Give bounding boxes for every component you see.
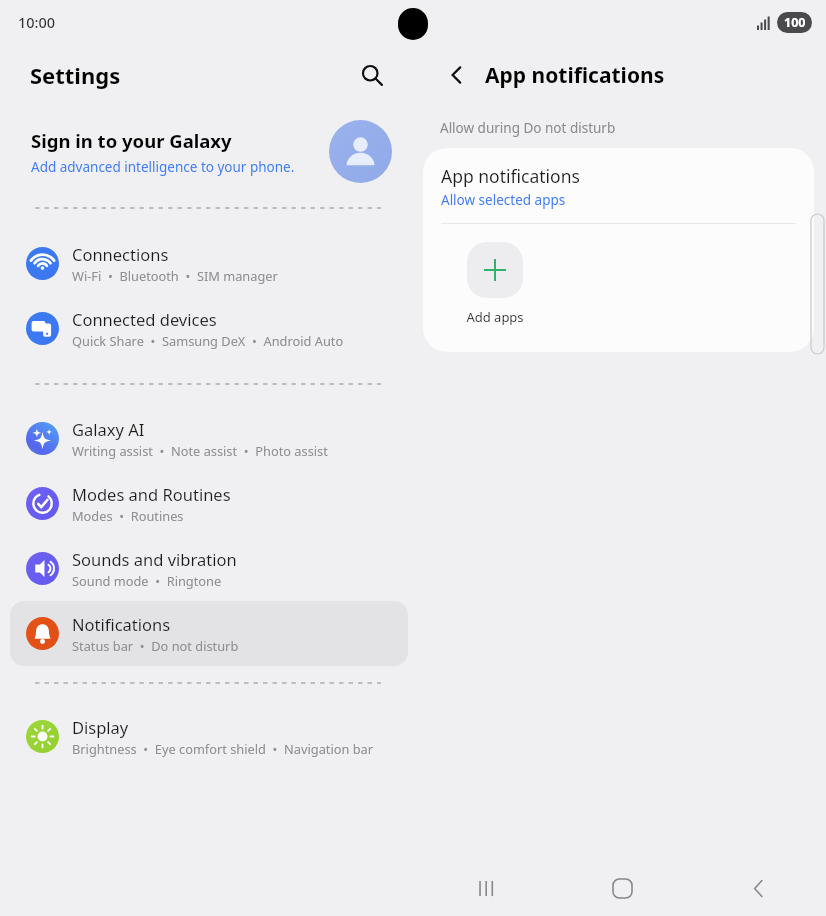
staticText: 100 [784, 14, 806, 31]
button[interactable]: Display [10, 704, 408, 769]
staticText: Brightness • Eye comfort shield • Naviga… [72, 740, 374, 757]
staticText: Add apps [466, 308, 524, 326]
button[interactable]: Galaxy AI [10, 406, 408, 471]
button[interactable]: Search [352, 55, 392, 95]
staticText: Quick Share • Samsung DeX • Android Auto [72, 332, 344, 349]
staticText: Allow during Do not disturb [440, 119, 616, 137]
staticText: Sound mode • Ringtone [72, 572, 222, 589]
staticText: Galaxy AI [72, 418, 145, 440]
staticText: Add advanced intelligence to your phone. [31, 158, 295, 176]
button[interactable]: Back [690, 860, 826, 916]
button[interactable]: Connected devices [10, 296, 408, 361]
button[interactable]: Connections [10, 231, 408, 296]
staticText: Writing assist • Note assist • Photo ass… [72, 442, 328, 459]
staticText: Modes and Routines [72, 483, 231, 505]
staticText: Notifications [72, 613, 171, 635]
staticText: App notifications [485, 61, 665, 90]
button[interactable]: Sign in to your Galaxy [0, 106, 418, 191]
button[interactable]: Back [436, 54, 478, 96]
staticText: Settings [30, 60, 121, 90]
staticText: Connections [72, 243, 169, 265]
staticText: Wi-Fi • Bluetooth • SIM manager [72, 267, 278, 284]
staticText: Sign in to your Galaxy [31, 128, 232, 153]
staticText: App notifications [441, 164, 580, 188]
staticText: Sounds and vibration [72, 548, 237, 570]
staticText: 10:00 [18, 12, 56, 32]
button[interactable]: Notifications [10, 601, 408, 666]
button[interactable]: Modes and Routines [10, 471, 408, 536]
button[interactable]: Home [554, 860, 690, 916]
button[interactable]: App notifications [423, 148, 814, 223]
staticText: Status bar • Do not disturb [72, 637, 239, 654]
staticText: Connected devices [72, 308, 217, 330]
staticText: Display [72, 716, 129, 738]
staticText: Modes • Routines [72, 507, 184, 524]
staticText: Allow selected apps [441, 191, 566, 209]
button[interactable]: Add apps [457, 242, 532, 326]
button[interactable]: Sounds and vibration [10, 536, 408, 601]
button[interactable]: Recents [418, 860, 554, 916]
